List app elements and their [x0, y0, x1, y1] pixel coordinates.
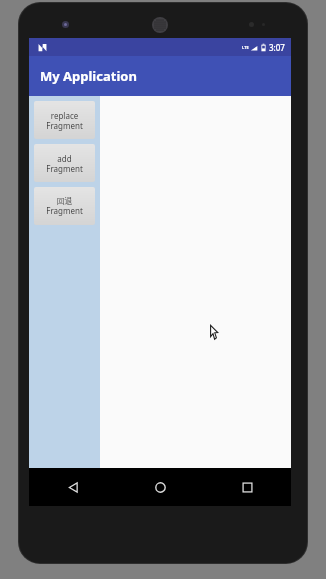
button[interactable]: My Application [29, 56, 291, 96]
staticText: add Fragment [46, 153, 83, 174]
button[interactable]: add Fragment [34, 144, 95, 182]
staticText: replace Fragment [46, 110, 83, 131]
button[interactable]: Home [117, 468, 204, 506]
button[interactable]: 回退 Fragment [34, 187, 95, 225]
button[interactable]: Recent apps [204, 468, 291, 506]
staticText: LTE [242, 45, 249, 50]
staticText: 3:07 [269, 42, 285, 53]
button[interactable]: Back [29, 468, 117, 506]
button[interactable]: replace Fragment [34, 101, 95, 139]
staticText: My Application [40, 67, 137, 85]
staticText: 回退 Fragment [46, 196, 83, 216]
